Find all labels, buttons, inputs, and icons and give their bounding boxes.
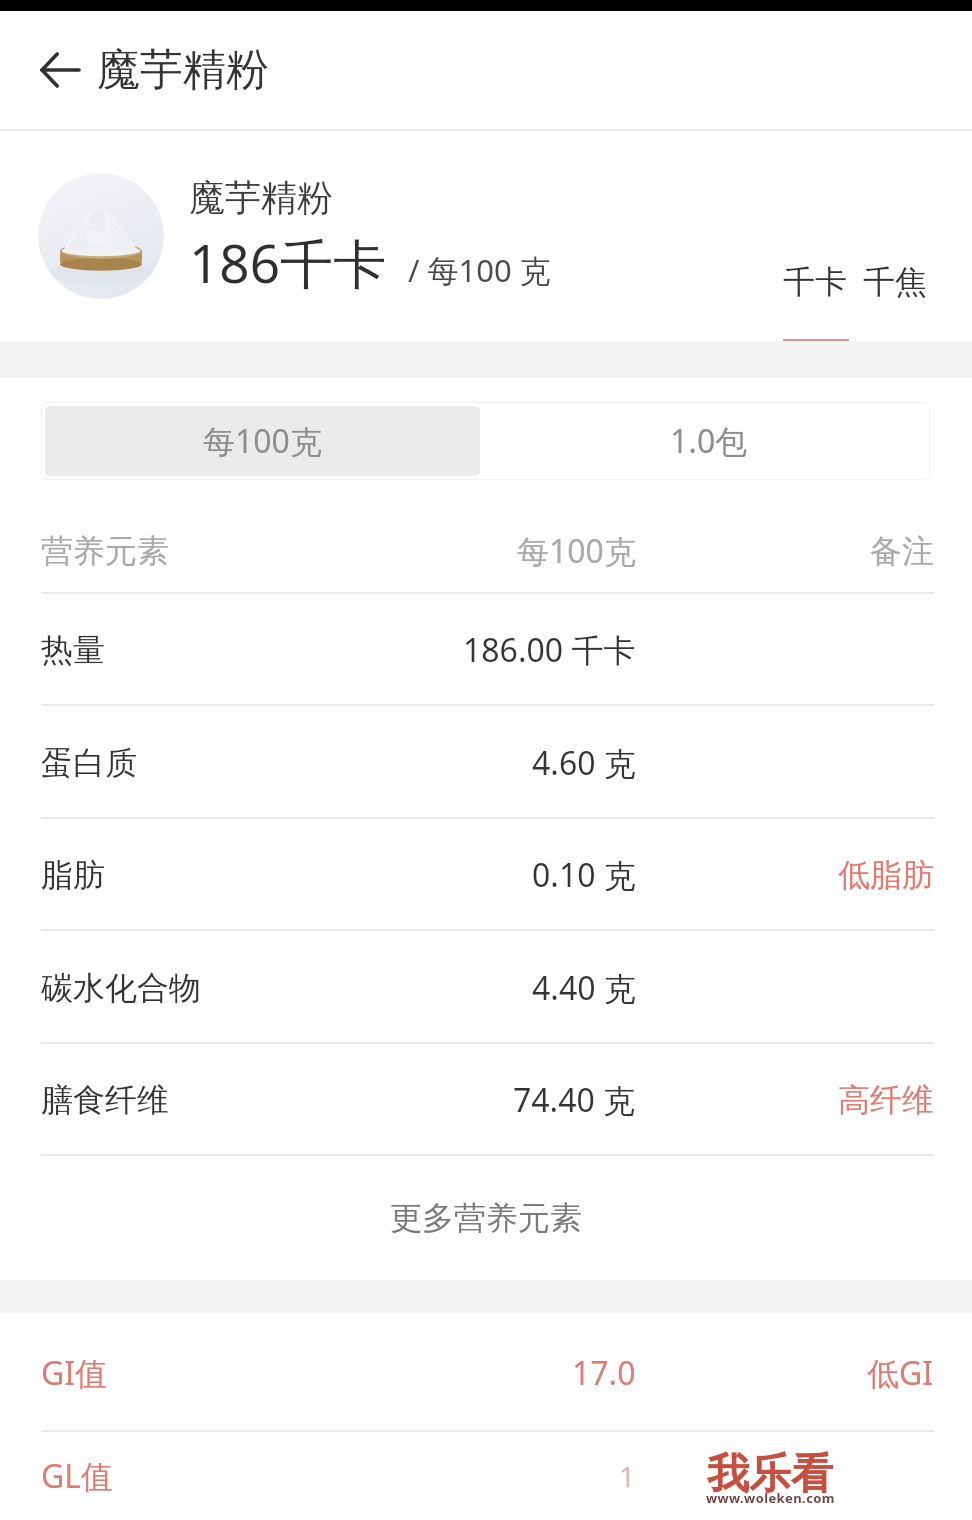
staticText: 膳食纤维 [41,1080,169,1120]
staticText: 魔芋精粉 [97,43,269,97]
button[interactable]: 碳水化合物 [0,931,972,1044]
button[interactable]: 营养元素 [0,508,972,594]
staticText: 4.60 克 [532,741,636,785]
button[interactable]: 1.0包 [480,406,926,476]
staticText: 千卡 [783,262,847,302]
staticText: 千焦 [863,262,927,302]
staticText: 1.0包 [670,419,748,463]
button[interactable]: GI值 [0,1313,972,1432]
staticText: 1 [619,1457,636,1495]
staticText: 低GI [867,1351,934,1395]
button[interactable]: 每100克 [45,406,480,476]
button[interactable]: Back [0,11,97,129]
staticText: 碳水化合物 [41,968,201,1008]
staticText: 17.0 [572,1351,636,1395]
staticText: 备注 [870,531,934,571]
staticText: / 每100 克 [408,249,551,291]
staticText: 0.10 克 [532,853,636,897]
button[interactable]: 千卡 [783,262,847,302]
staticText: 脂肪 [41,855,105,895]
staticText: 每100克 [517,529,636,573]
staticText: GL值 [41,1454,114,1498]
staticText: 我乐看 [707,1448,833,1501]
button[interactable]: 脂肪 [0,819,972,931]
button[interactable]: 更多营养元素 [0,1156,972,1280]
staticText: 更多营养元素 [390,1198,582,1238]
staticText: 186.00 千卡 [463,628,636,672]
staticText: 每100克 [203,419,322,463]
button[interactable]: GL值 [0,1432,972,1520]
staticText: 4.40 克 [532,966,636,1010]
staticText: 热量 [41,630,105,670]
button[interactable]: 蛋白质 [0,706,972,819]
staticText: 74.40 克 [513,1078,636,1122]
staticText: 高纤维 [838,1080,934,1120]
staticText: www.woleken.com [706,1489,835,1507]
button[interactable]: 膳食纤维 [0,1044,972,1156]
staticText: 营养元素 [41,531,169,571]
staticText: GI值 [41,1351,108,1395]
button[interactable]: 热量 [0,594,972,706]
button[interactable]: 千焦 [863,262,927,302]
staticText: 蛋白质 [41,743,137,783]
staticText: 低脂肪 [838,855,934,895]
staticText: 186千卡 [189,226,386,298]
staticText: 魔芋精粉 [189,175,333,220]
